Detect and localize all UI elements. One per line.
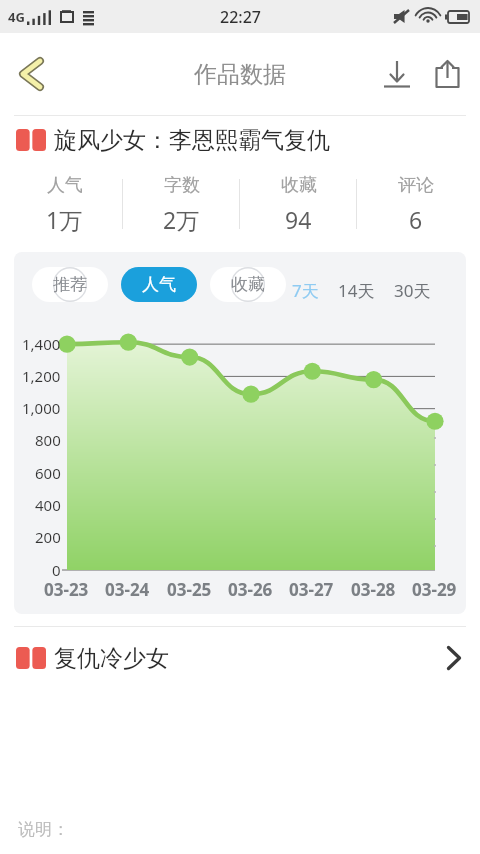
staticText: 03-29 [412, 578, 457, 601]
staticText: 6 [409, 204, 423, 235]
staticText: 推荐 [53, 274, 87, 295]
staticText: 03-24 [105, 578, 150, 601]
button[interactable]: 推荐 [32, 267, 108, 302]
staticText: 作品数据 [194, 60, 286, 89]
staticText: 复仇冷少女 [54, 644, 169, 673]
staticText: 说明： [18, 819, 69, 840]
staticText: 400 [35, 495, 61, 515]
staticText: 94 [285, 204, 312, 235]
button[interactable]: 旋风少女：李恩熙霸气复仇 [0, 116, 480, 164]
staticText: 7天 [292, 279, 319, 302]
staticText: 200 [35, 527, 61, 547]
staticText: 1,200 [22, 366, 61, 386]
staticText: 03-27 [289, 578, 334, 601]
button[interactable]: Share [422, 49, 472, 99]
button[interactable]: Download [372, 49, 422, 99]
staticText: 收藏 [281, 174, 317, 197]
staticText: 旋风少女：李恩熙霸气复仇 [54, 126, 330, 155]
staticText: 1,000 [22, 398, 61, 418]
staticText: 0 [52, 560, 61, 580]
staticText: 22:27 [220, 6, 261, 28]
staticText: 人气 [142, 274, 176, 295]
button[interactable]: 14天 [336, 275, 377, 306]
button[interactable]: 7天 [290, 275, 321, 306]
staticText: 字数 [164, 174, 200, 197]
staticText: 03-23 [44, 578, 89, 601]
button[interactable]: Back [4, 47, 58, 101]
staticText: 评论 [398, 174, 434, 197]
staticText: 03-28 [351, 578, 396, 601]
staticText: 收藏 [231, 274, 265, 295]
staticText: 人气 [47, 174, 83, 197]
staticText: 800 [35, 430, 61, 450]
staticText: 2万 [163, 204, 200, 235]
button[interactable]: 30天 [392, 275, 433, 306]
staticText: 14天 [338, 279, 375, 302]
staticText: 1万 [46, 204, 83, 235]
staticText: 03-26 [228, 578, 273, 601]
button[interactable]: 收藏 [210, 267, 286, 302]
staticText: 1,400 [22, 334, 61, 354]
staticText: 30天 [394, 279, 431, 302]
staticText: 03-25 [167, 578, 212, 601]
staticText: 4G [8, 8, 25, 26]
button[interactable]: 人气 [121, 267, 197, 302]
staticText: 600 [35, 463, 61, 483]
button[interactable]: 复仇冷少女 [0, 627, 480, 689]
